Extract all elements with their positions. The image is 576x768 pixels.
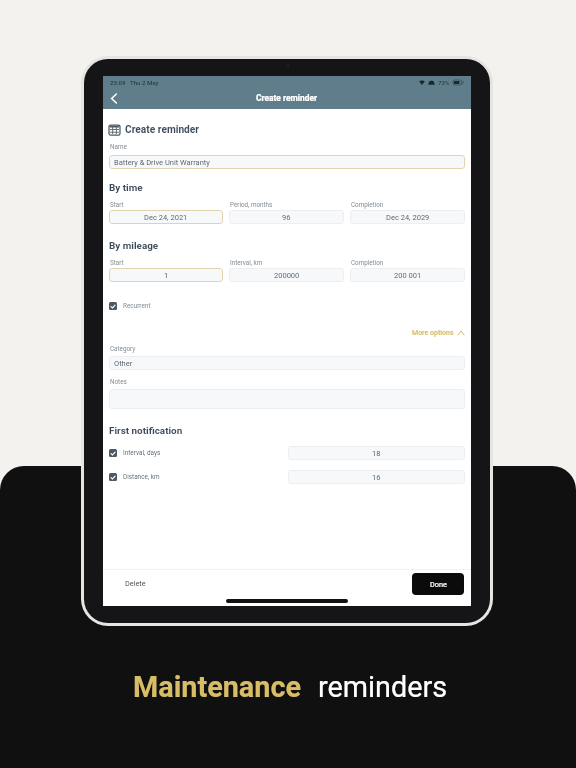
staticText: Interval, km bbox=[230, 259, 263, 266]
staticText: 1 bbox=[164, 271, 169, 280]
staticText: Completion bbox=[351, 259, 384, 266]
staticText: Start bbox=[110, 201, 124, 208]
staticText: Thu 2 May bbox=[130, 79, 159, 86]
staticText: Maintenance bbox=[133, 670, 302, 704]
staticText: More options bbox=[412, 329, 454, 337]
staticText: By mileage bbox=[109, 240, 159, 252]
staticText: Distance, km bbox=[123, 473, 160, 481]
staticText: 96 bbox=[282, 213, 291, 222]
button[interactable]: Interval, days bbox=[109, 449, 288, 457]
button[interactable]: 1 bbox=[109, 268, 223, 282]
staticText: Start bbox=[110, 259, 124, 266]
staticText: Period, months bbox=[230, 201, 273, 208]
staticText: 16 bbox=[372, 473, 381, 482]
button[interactable]: 200000 bbox=[229, 268, 344, 282]
button[interactable]: Recurrent bbox=[109, 302, 151, 310]
staticText: Create reminder bbox=[256, 93, 318, 103]
staticText: Name bbox=[110, 143, 127, 150]
staticText: First notification bbox=[109, 425, 183, 437]
staticText: 200 001 bbox=[394, 271, 422, 280]
staticText: Dec 24, 2029 bbox=[386, 213, 430, 222]
button[interactable]: More options bbox=[103, 329, 464, 337]
staticText: 18 bbox=[372, 449, 381, 458]
staticText: Create reminder bbox=[125, 124, 200, 136]
staticText: reminders bbox=[318, 670, 448, 704]
staticText: Done bbox=[430, 580, 447, 589]
staticText: 23:09 bbox=[110, 79, 126, 86]
button[interactable]: Dec 24, 2021 bbox=[109, 210, 223, 224]
button[interactable]: Done bbox=[412, 573, 464, 595]
staticText: Category bbox=[110, 345, 136, 352]
button[interactable]: 18 bbox=[288, 446, 465, 460]
staticText: Battery & Drive Unit Warranty bbox=[114, 158, 210, 167]
button[interactable]: Dec 24, 2029 bbox=[350, 210, 465, 224]
button[interactable]: Other bbox=[109, 356, 465, 370]
staticText: Dec 24, 2021 bbox=[144, 213, 188, 222]
button[interactable]: 200 001 bbox=[350, 268, 465, 282]
button[interactable]: Distance, km bbox=[109, 473, 288, 481]
button[interactable]: 16 bbox=[288, 470, 465, 484]
staticText: Other bbox=[114, 359, 133, 368]
staticText: 73% bbox=[438, 79, 450, 86]
staticText: 200000 bbox=[274, 271, 300, 280]
button[interactable]: Delete bbox=[125, 579, 146, 588]
button[interactable]: 96 bbox=[229, 210, 344, 224]
staticText: Completion bbox=[351, 201, 384, 208]
staticText: Notes bbox=[110, 378, 127, 385]
button[interactable]: Back bbox=[106, 90, 121, 106]
staticText: By time bbox=[109, 182, 143, 194]
staticText: Interval, days bbox=[123, 449, 161, 457]
staticText: Recurrent bbox=[123, 302, 151, 310]
button[interactable] bbox=[109, 389, 465, 409]
button[interactable]: Battery & Drive Unit Warranty bbox=[109, 155, 465, 169]
